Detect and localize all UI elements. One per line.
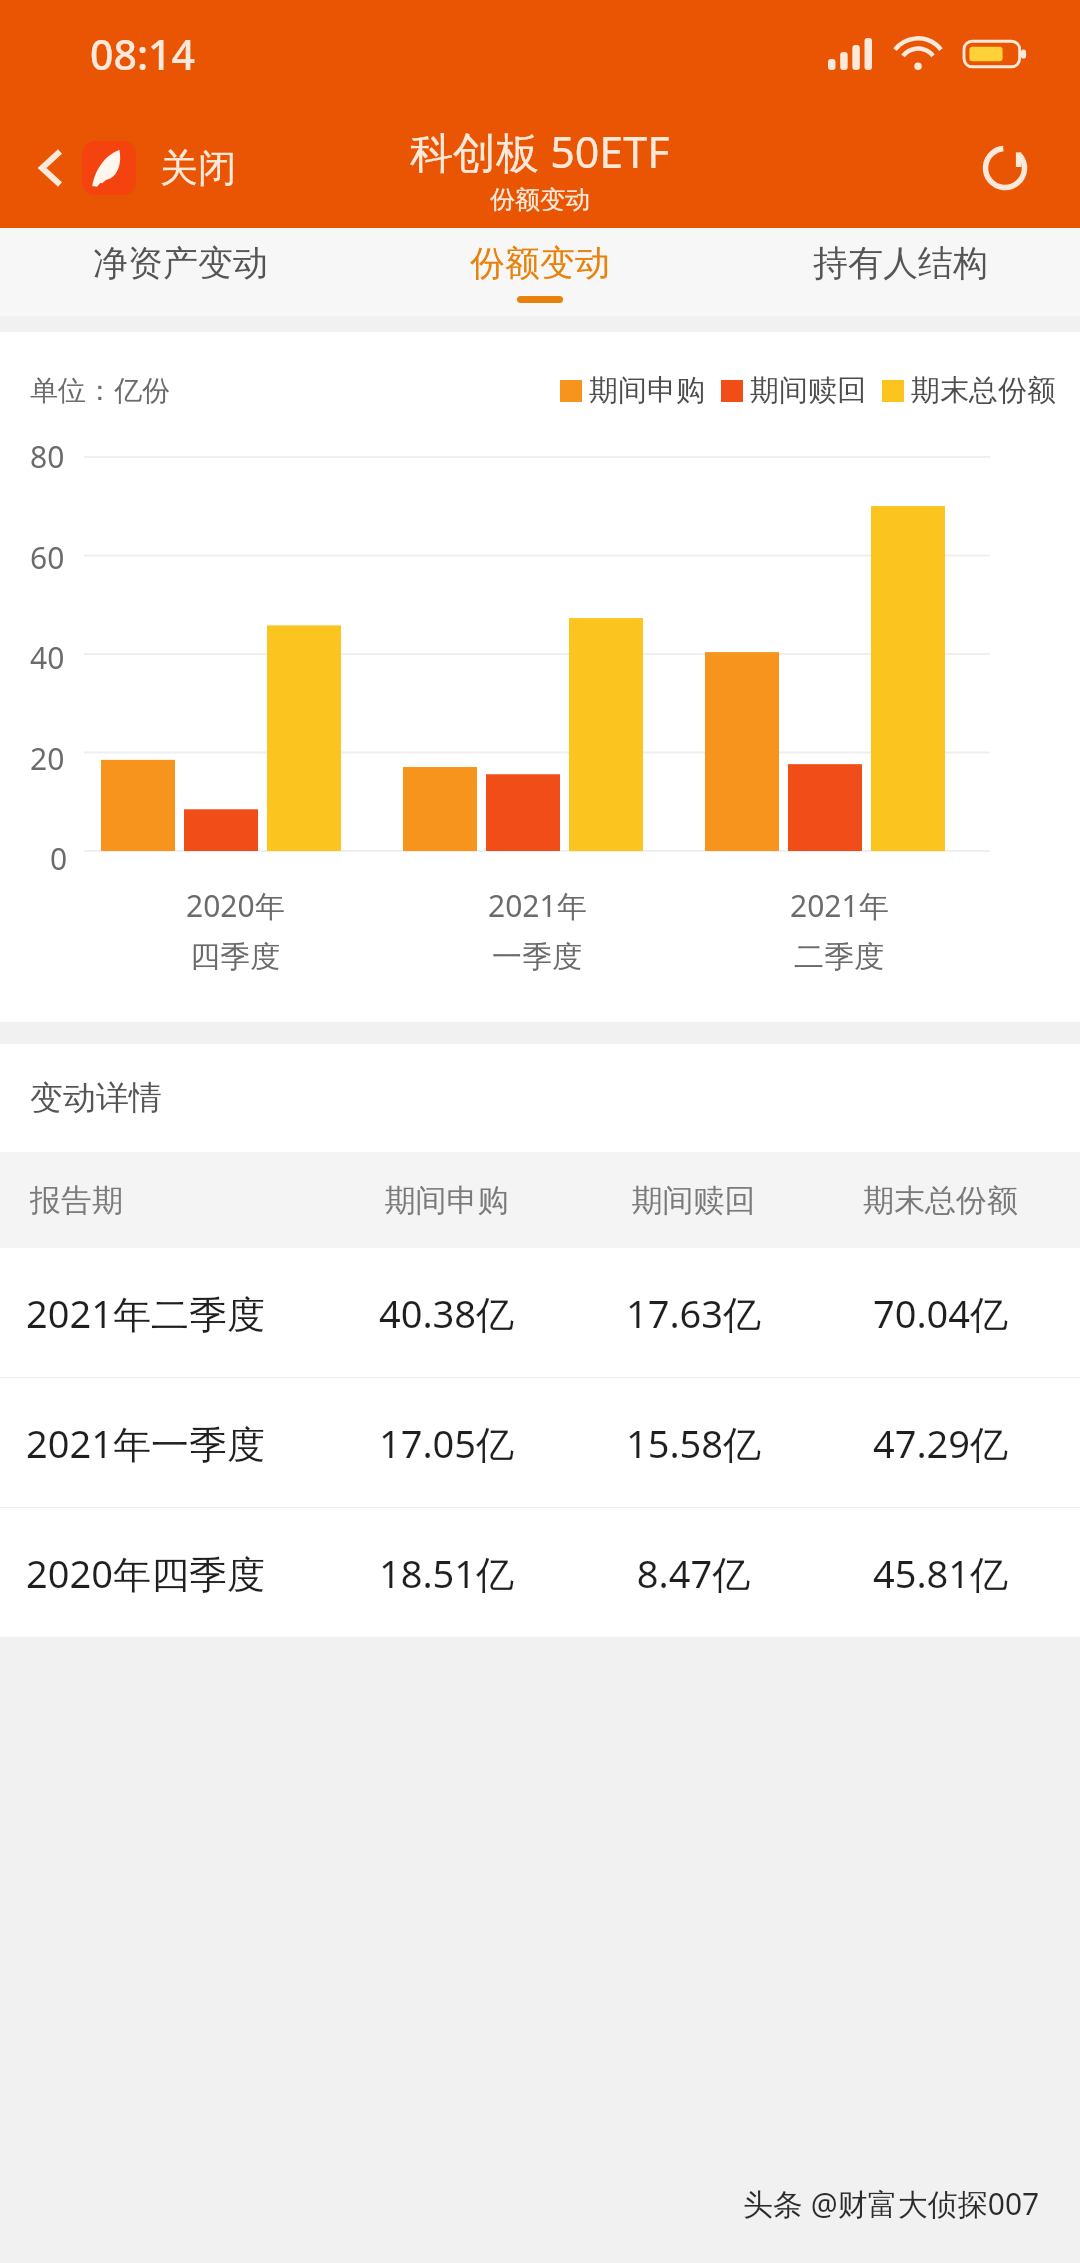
staticText: 45.81亿 <box>817 1547 1064 1599</box>
button[interactable]: 份额变动 <box>360 228 720 316</box>
staticText: 47.29亿 <box>817 1417 1064 1469</box>
staticText: 2021年 <box>790 885 889 926</box>
staticText: 单位：亿份 <box>30 373 170 408</box>
staticText: 一季度 <box>492 938 582 976</box>
staticText: 科创板 50ETF <box>410 122 670 181</box>
staticText: 40 <box>30 637 65 678</box>
button[interactable]: 持有人结构 <box>720 228 1080 316</box>
button[interactable]: Back <box>30 133 242 203</box>
staticText: 份额变动 <box>470 241 610 285</box>
staticText: 2021年二季度 <box>26 1287 323 1339</box>
staticText: 头条 @财富大侦探007 <box>743 2183 1040 2224</box>
staticText: 2021年 <box>488 885 587 926</box>
staticText: 期间赎回 <box>570 1181 817 1220</box>
staticText: 17.63亿 <box>570 1287 817 1339</box>
button[interactable]: 2020年四季度 <box>0 1508 1080 1637</box>
staticText: 2020年 <box>186 885 285 926</box>
staticText: 2021年一季度 <box>26 1417 323 1469</box>
staticText: 60 <box>30 537 65 578</box>
staticText: 80 <box>30 436 65 477</box>
staticText: 期末总份额 <box>817 1181 1064 1220</box>
button[interactable]: 2021年一季度 <box>0 1378 1080 1507</box>
staticText: 期间赎回 <box>750 372 866 409</box>
staticText: 变动详情 <box>30 1077 162 1119</box>
button[interactable]: Refresh <box>974 137 1036 199</box>
staticText: 20 <box>30 738 65 779</box>
staticText: 报告期 <box>30 1181 323 1220</box>
button[interactable]: 2021年二季度 <box>0 1248 1080 1377</box>
staticText: 8.47亿 <box>570 1547 817 1599</box>
staticText: 08:14 <box>90 26 195 82</box>
staticText: 期间申购 <box>323 1181 570 1220</box>
staticText: 期间申购 <box>589 372 705 409</box>
staticText: 0 <box>50 838 68 879</box>
button[interactable]: 净资产变动 <box>0 228 360 316</box>
staticText: 净资产变动 <box>93 241 268 285</box>
staticText: 15.58亿 <box>570 1417 817 1469</box>
staticText: 份额变动 <box>490 184 590 215</box>
staticText: 17.05亿 <box>323 1417 570 1469</box>
staticText: 期末总份额 <box>911 372 1056 409</box>
staticText: 二季度 <box>794 938 884 976</box>
staticText: 2020年四季度 <box>26 1547 323 1599</box>
staticText: 关闭 <box>160 144 236 192</box>
staticText: 70.04亿 <box>817 1287 1064 1339</box>
other: Back <box>36 145 66 191</box>
staticText: 四季度 <box>190 938 280 976</box>
staticText: 18.51亿 <box>323 1547 570 1599</box>
staticText: 持有人结构 <box>813 241 988 285</box>
staticText: 40.38亿 <box>323 1287 570 1339</box>
